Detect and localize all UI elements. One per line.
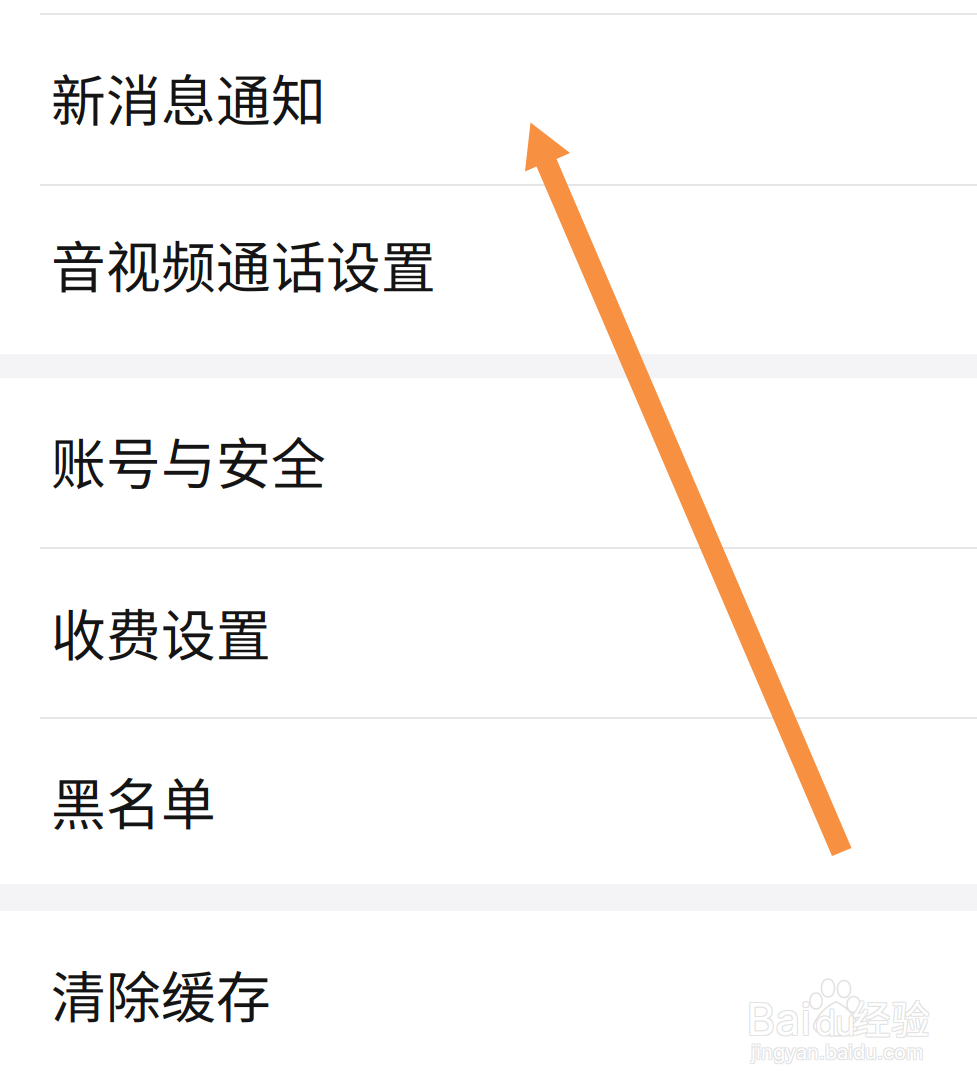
staticText: 黑名单 <box>51 761 216 840</box>
button[interactable]: 黑名单 <box>0 719 977 884</box>
button[interactable]: 新消息通知 <box>0 15 977 184</box>
staticText: 音视频通话设置 <box>51 224 436 303</box>
button[interactable]: 清除缓存 <box>0 911 977 1084</box>
staticText: 账号与安全 <box>51 420 326 500</box>
button[interactable]: 音视频通话设置 <box>0 186 977 354</box>
button[interactable]: 收费设置 <box>0 549 977 717</box>
button[interactable]: 账号与安全 <box>0 378 977 547</box>
staticText: 新消息通知 <box>51 57 326 137</box>
staticText: 收费设置 <box>51 592 271 671</box>
staticText: 清除缓存 <box>51 954 271 1033</box>
